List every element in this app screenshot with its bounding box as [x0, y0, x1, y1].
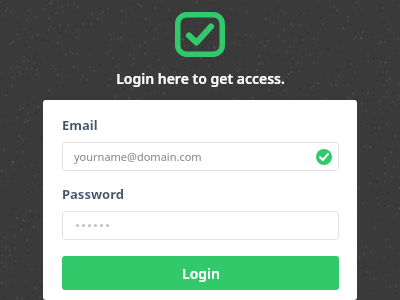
button[interactable]: yourname@domain.com [62, 142, 339, 171]
staticText: yourname@domain.com [74, 149, 202, 164]
other: App logo [175, 12, 225, 57]
staticText: Email [62, 116, 98, 134]
button[interactable]: Login [62, 256, 339, 290]
staticText: Login here to get access. [116, 69, 285, 88]
staticText: Login [182, 264, 220, 283]
staticText: Password [62, 185, 124, 203]
button[interactable] [62, 211, 339, 240]
